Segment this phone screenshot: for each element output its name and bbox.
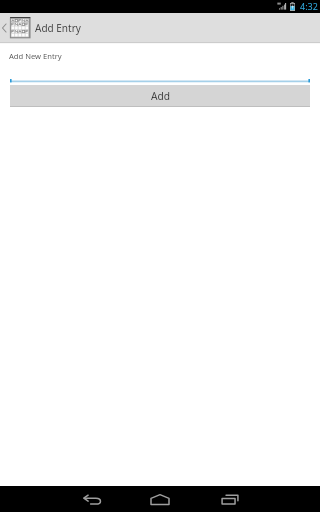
button[interactable]: Recent apps <box>194 486 262 512</box>
staticText: 4:32 <box>300 0 318 12</box>
button[interactable]: New entry text field <box>10 74 310 83</box>
staticText: Add <box>151 89 171 103</box>
button[interactable]: Home <box>126 486 194 512</box>
button[interactable]: Add New Entry <box>9 51 320 61</box>
staticText: Add Entry <box>35 21 81 35</box>
button[interactable]: Navigate up <box>0 13 320 42</box>
button[interactable]: Back <box>58 486 126 512</box>
staticText: Add New Entry <box>9 51 62 61</box>
button[interactable]: Add <box>10 85 310 107</box>
